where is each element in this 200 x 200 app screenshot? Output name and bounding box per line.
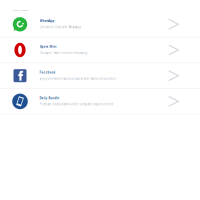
- staticText: WhatsApp: [39, 19, 54, 23]
- button[interactable]: WhatsApp: [0, 12, 200, 37]
- staticText: Unlimited Chat with WhatsApp: [39, 25, 81, 29]
- staticText: Purchase a daily data bundle today and s…: [39, 102, 113, 106]
- button[interactable]: Opera Mini: [0, 37, 200, 63]
- staticText: Daily Bundle: [39, 96, 59, 100]
- staticText: Enjoy unlimited Facebook access with Fac…: [39, 77, 115, 80]
- button[interactable]: Facebook: [0, 63, 200, 89]
- button[interactable]: Daily Bundle: [0, 89, 200, 115]
- staticText: Cheaper, faster internet browsing: [39, 51, 87, 55]
- staticText: Select a bundle: [13, 8, 28, 12]
- staticText: Opera Mini: [39, 45, 56, 49]
- staticText: Facebook: [39, 70, 55, 74]
